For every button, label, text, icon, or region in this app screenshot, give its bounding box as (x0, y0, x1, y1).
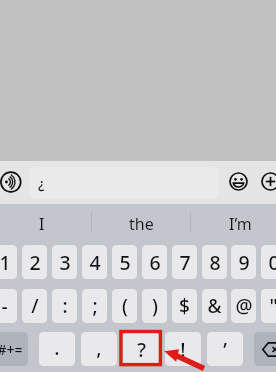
staticText: $ (179, 293, 190, 319)
button[interactable]: 1 (0, 245, 17, 279)
staticText: I (39, 213, 45, 235)
staticText: ? (137, 336, 146, 363)
staticText: 2 (29, 249, 41, 276)
button[interactable]: 5 (112, 245, 137, 279)
button[interactable]: 3 (52, 245, 77, 279)
button[interactable]: 2 (22, 245, 47, 279)
button[interactable]: Backspace (254, 332, 276, 366)
staticText: & (207, 293, 222, 319)
button[interactable]: Audio message (0, 171, 22, 193)
staticText: 0 (268, 249, 276, 276)
staticText: 3 (59, 249, 71, 276)
staticText: ! (180, 336, 186, 363)
staticText: . (54, 334, 60, 361)
button[interactable]: @ (231, 289, 256, 323)
button[interactable]: ’ (207, 332, 243, 366)
button[interactable]: 6 (142, 245, 167, 279)
staticText: - (1, 293, 8, 319)
staticText: ( (122, 293, 128, 319)
staticText: @ (235, 293, 253, 319)
button[interactable]: : (52, 289, 77, 323)
staticText: / (31, 293, 39, 319)
staticText: 1 (0, 249, 11, 276)
button[interactable]: Emoji (229, 172, 248, 191)
button[interactable]: the (93, 204, 189, 244)
button[interactable]: , (81, 332, 117, 366)
staticText: #+= (0, 340, 23, 359)
button[interactable]: / (22, 289, 47, 323)
button[interactable]: $ (172, 289, 197, 323)
staticText: the (129, 213, 154, 235)
staticText: 9 (238, 249, 250, 276)
staticText: 7 (179, 249, 191, 276)
button[interactable]: ? (123, 332, 159, 366)
button[interactable]: 0 (261, 245, 276, 279)
button[interactable]: & (202, 289, 227, 323)
button[interactable]: #+= (0, 332, 28, 366)
staticText: ; (92, 293, 98, 319)
staticText: 8 (209, 249, 221, 276)
button[interactable]: - (0, 289, 17, 323)
button[interactable]: I (0, 204, 90, 244)
staticText: ) (152, 293, 158, 319)
button[interactable]: ; (82, 289, 107, 323)
button[interactable]: ( (112, 289, 137, 323)
button[interactable]: 9 (231, 245, 256, 279)
button[interactable]: . (39, 332, 75, 366)
staticText: 4 (89, 249, 101, 276)
staticText: : (62, 293, 68, 319)
button[interactable]: 4 (82, 245, 107, 279)
staticText: I’m (229, 213, 252, 235)
button[interactable]: ) (142, 289, 167, 323)
button[interactable]: Add (261, 172, 276, 191)
staticText: ¿ (38, 173, 45, 193)
button[interactable]: 8 (202, 245, 227, 279)
button[interactable]: ¿ (29, 167, 219, 199)
staticText: " (269, 293, 276, 319)
staticText: 5 (119, 249, 131, 276)
button[interactable]: I’m (192, 204, 276, 244)
button[interactable]: ! (165, 332, 201, 366)
staticText: 6 (149, 249, 161, 276)
button[interactable]: " (261, 289, 276, 323)
staticText: , (96, 334, 102, 361)
button[interactable]: 7 (172, 245, 197, 279)
staticText: ’ (223, 336, 227, 363)
